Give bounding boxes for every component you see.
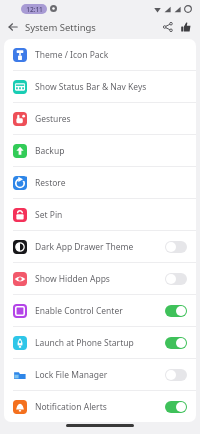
- button[interactable]: Launch at Phone Startup: [4, 327, 196, 358]
- button[interactable]: Like: [177, 18, 195, 36]
- button[interactable]: Back: [4, 18, 22, 36]
- button[interactable]: Restore: [4, 167, 196, 198]
- staticText: Show Status Bar & Nav Keys: [35, 81, 187, 93]
- staticText: Lock File Manager: [35, 369, 165, 381]
- button[interactable]: Set Pin: [4, 199, 196, 230]
- staticText: Dark App Drawer Theme: [35, 241, 165, 253]
- button[interactable]: Notification Alerts: [4, 391, 196, 422]
- staticText: 12:11: [26, 5, 43, 14]
- button[interactable]: Lock File Manager: [4, 359, 196, 390]
- staticText: System Settings: [25, 21, 96, 34]
- staticText: Enable Control Center: [35, 305, 165, 317]
- button[interactable]: On: [165, 337, 187, 349]
- button[interactable]: On: [165, 305, 187, 317]
- button[interactable]: Off: [165, 273, 187, 285]
- button[interactable]: Backup: [4, 135, 196, 166]
- button[interactable]: Off: [165, 369, 187, 381]
- staticText: Show Hidden Apps: [35, 273, 165, 285]
- staticText: Restore: [35, 177, 187, 189]
- staticText: Notification Alerts: [35, 401, 165, 413]
- staticText: Theme / Icon Pack: [35, 49, 187, 61]
- button[interactable]: Theme / Icon Pack: [4, 39, 196, 70]
- staticText: Gestures: [35, 113, 187, 125]
- button[interactable]: Show Hidden Apps: [4, 263, 196, 294]
- button[interactable]: Share: [159, 18, 177, 36]
- button[interactable]: Show Status Bar & Nav Keys: [4, 71, 196, 102]
- staticText: Set Pin: [35, 209, 187, 221]
- button[interactable]: Enable Control Center: [4, 295, 196, 326]
- button[interactable]: Dark App Drawer Theme: [4, 231, 196, 262]
- staticText: Backup: [35, 145, 187, 157]
- button[interactable]: Off: [165, 241, 187, 253]
- button[interactable]: Gestures: [4, 103, 196, 134]
- staticText: Launch at Phone Startup: [35, 337, 165, 349]
- button[interactable]: On: [165, 401, 187, 413]
